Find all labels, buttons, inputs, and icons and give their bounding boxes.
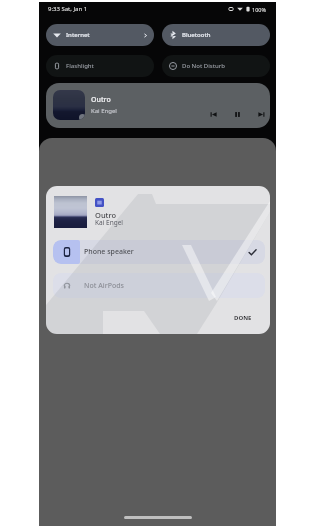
button[interactable]: Outro	[46, 83, 270, 128]
button[interactable]: Pause	[231, 108, 243, 120]
staticText: Not AirPods	[84, 281, 124, 291]
staticText: 100%	[252, 6, 267, 13]
button[interactable]: Next	[255, 108, 267, 120]
staticText: Phone speaker	[84, 247, 134, 257]
button[interactable]: Flashlight	[46, 55, 154, 77]
button[interactable]: Not AirPods	[53, 273, 265, 298]
button[interactable]: Bluetooth	[162, 24, 270, 46]
staticText: Do Not Disturb	[182, 62, 226, 70]
staticText: DONE	[234, 314, 252, 322]
button[interactable]: Phone speaker	[53, 240, 265, 264]
staticText: Outro	[95, 210, 117, 220]
staticText: Internet	[66, 31, 90, 39]
staticText: Kai Engel	[91, 107, 117, 115]
staticText: 9:33 Sat, Jan 1	[48, 5, 88, 13]
staticText: Outro	[91, 95, 111, 105]
button[interactable]: Do Not Disturb	[162, 55, 270, 77]
button[interactable]: Previous	[207, 108, 219, 120]
button[interactable]: Internet	[46, 24, 154, 46]
staticText: Flashlight	[66, 62, 94, 70]
staticText: Bluetooth	[182, 31, 211, 39]
button[interactable]: DONE	[228, 310, 258, 326]
staticText: Kai Engel	[95, 218, 124, 227]
